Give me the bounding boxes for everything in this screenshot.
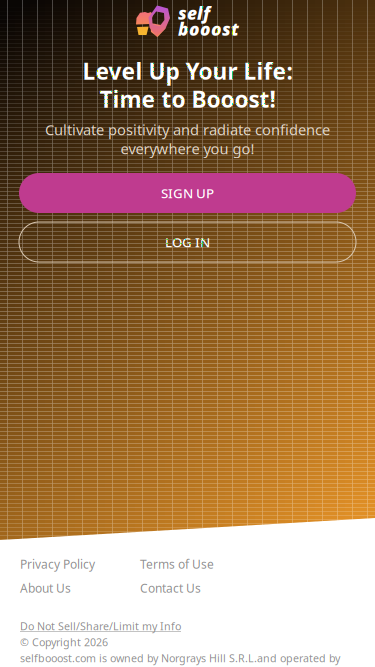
button[interactable]: SIGN UP [19,173,356,213]
button[interactable]: Contact Us [140,579,260,597]
staticText: © Copyright 2026 [20,635,108,649]
staticText: Cultivate positivity and radiate confide… [45,120,330,139]
staticText: SIGN UP [161,184,214,202]
staticText: booost [178,17,239,40]
button[interactable]: Terms of Use [140,555,260,573]
staticText: Contact Us [140,580,201,596]
staticText: everywhere you go! [120,139,254,158]
button[interactable]: About Us [20,579,140,597]
button[interactable]: LOG IN [19,222,356,262]
staticText: LOG IN [165,233,210,251]
staticText: self [178,1,210,24]
staticText: Do Not Sell/Share/Limit my Info [20,619,181,633]
button[interactable]: Do Not Sell/Share/Limit my Info [20,619,181,633]
staticText: Terms of Use [140,556,214,572]
staticText: Level Up Your Life: [82,56,292,86]
staticText: About Us [20,580,71,596]
staticText: selfbooost.com is owned by Norgrays Hill… [20,651,340,665]
button[interactable]: Privacy Policy [20,555,140,573]
staticText: Privacy Policy [20,556,95,572]
staticText: Time to Booost! [99,84,275,114]
